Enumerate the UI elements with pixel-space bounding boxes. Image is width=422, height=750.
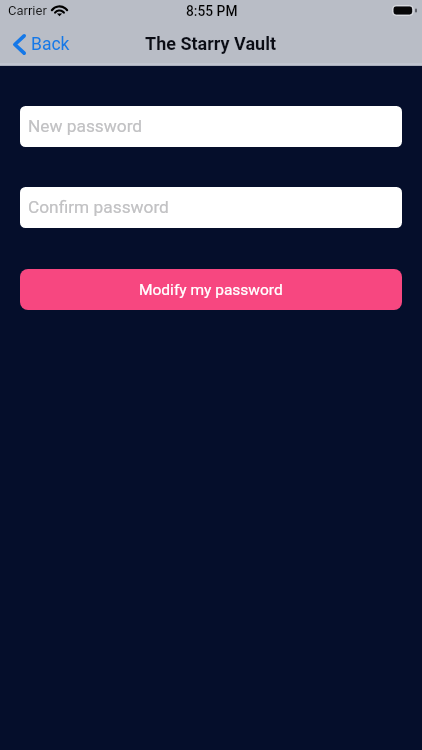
staticText: The Starry Vault <box>145 33 277 54</box>
button[interactable]: Back <box>0 22 80 66</box>
staticText: Modify my password <box>139 281 283 299</box>
other: Back <box>13 34 26 55</box>
staticText: New password <box>28 116 143 136</box>
staticText: Confirm password <box>28 197 169 217</box>
other: Battery <box>392 5 417 16</box>
button[interactable]: Modify my password <box>20 269 402 310</box>
staticText: 8:55 PM <box>186 3 238 19</box>
other: Wi-Fi <box>52 5 67 16</box>
button[interactable]: Confirm password <box>20 187 402 228</box>
staticText: Back <box>31 34 70 55</box>
staticText: Carrier <box>8 3 47 18</box>
button[interactable]: New password <box>20 106 402 147</box>
